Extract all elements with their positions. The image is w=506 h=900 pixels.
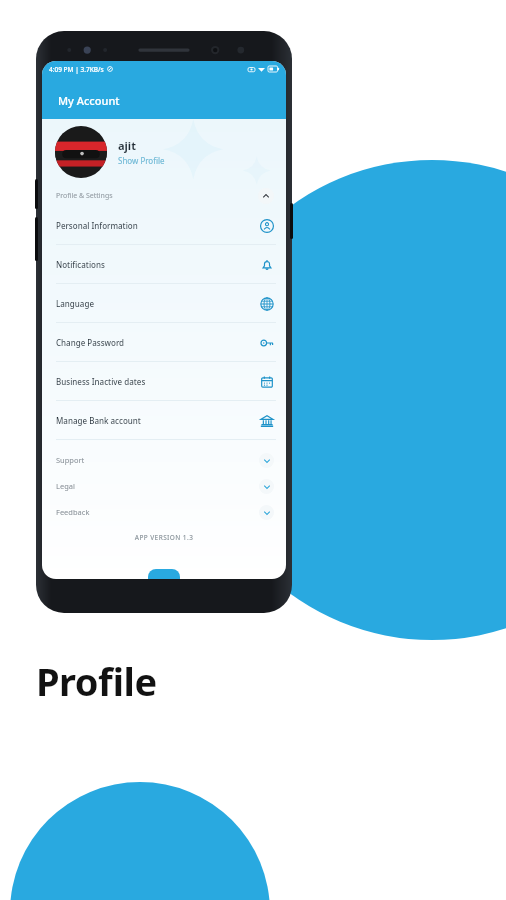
button[interactable]: Legal — [42, 473, 286, 499]
other: Expand Support — [259, 453, 274, 468]
button[interactable]: Add — [148, 569, 180, 579]
button[interactable]: Profile & Settings — [42, 185, 286, 206]
staticText: Business Inactive dates — [56, 376, 146, 387]
button[interactable]: Support — [42, 447, 286, 473]
other: Collapse Profile and Settings — [258, 188, 274, 204]
staticText: Legal — [56, 481, 75, 491]
staticText: Show Profile — [118, 155, 165, 166]
staticText: APP VERSION 1.3 — [42, 533, 286, 542]
staticText: Profile — [36, 655, 157, 707]
button[interactable]: Notifications — [42, 245, 286, 284]
staticText: Notifications — [56, 259, 105, 270]
other: Expand Feedback — [259, 505, 274, 520]
staticText: ajit — [118, 138, 136, 153]
button[interactable]: Manage Bank account — [42, 401, 286, 440]
button[interactable]: Feedback — [42, 499, 286, 525]
button[interactable]: Change Password — [42, 323, 286, 362]
staticText: Language — [56, 298, 94, 309]
other: Expand Legal — [259, 479, 274, 494]
button[interactable]: Language — [42, 284, 286, 323]
button[interactable]: Business Inactive dates — [42, 362, 286, 401]
staticText: Manage Bank account — [56, 415, 141, 426]
staticText: Personal Information — [56, 220, 138, 231]
button[interactable]: Personal Information — [42, 206, 286, 245]
staticText: My Account — [58, 93, 120, 108]
staticText: 4:09 PM | 3.7KB/s — [49, 65, 104, 74]
staticText: Change Password — [56, 337, 125, 348]
staticText: Feedback — [56, 507, 90, 517]
staticText: Profile & Settings — [56, 191, 113, 201]
staticText: Support — [56, 455, 85, 465]
button[interactable]: ajit — [55, 119, 286, 185]
